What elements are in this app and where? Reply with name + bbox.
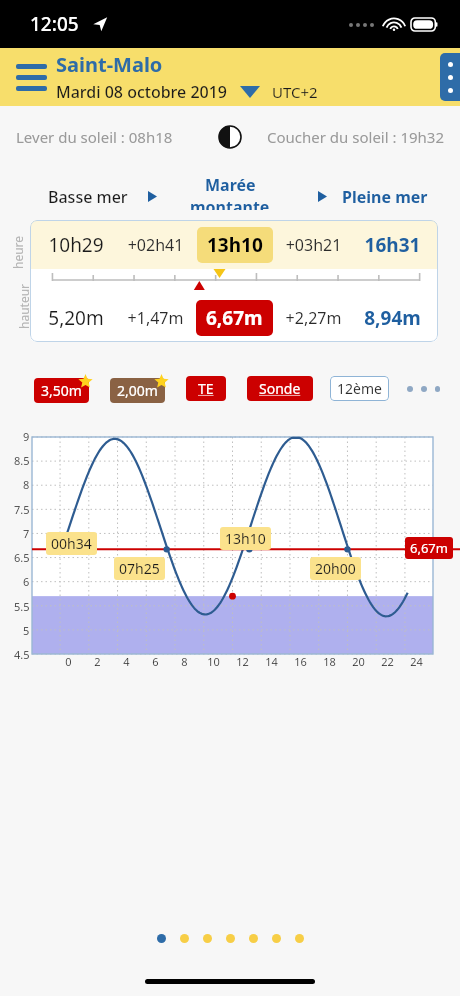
staticText: 6,67m bbox=[410, 539, 448, 557]
staticText: 24 bbox=[402, 654, 431, 669]
staticText: 18 bbox=[315, 654, 344, 669]
staticText: 6 bbox=[23, 574, 30, 589]
button[interactable]: More options bbox=[440, 53, 460, 101]
button[interactable]: Menu bbox=[12, 57, 51, 98]
staticText: 12 bbox=[228, 654, 257, 669]
staticText: 12ème bbox=[337, 379, 382, 398]
staticText: 0 bbox=[54, 654, 83, 669]
staticText: 16h31 bbox=[353, 232, 432, 258]
staticText: UTC+2 bbox=[272, 82, 318, 102]
button[interactable]: Basse mer bbox=[48, 186, 128, 208]
staticText: 5.5 bbox=[14, 599, 30, 614]
staticText: heure bbox=[10, 235, 26, 269]
button[interactable]: 2,00m bbox=[117, 381, 158, 400]
staticText: 16 bbox=[286, 654, 315, 669]
staticText: Saint-Malo bbox=[56, 51, 163, 78]
staticText: 9 bbox=[23, 429, 30, 444]
staticText: 5 bbox=[23, 623, 30, 638]
staticText: 10h29 bbox=[36, 232, 116, 258]
staticText: Mardi 08 octobre 2019 bbox=[56, 81, 228, 103]
staticText: 07h25 bbox=[119, 559, 160, 578]
staticText: 5,20m bbox=[36, 305, 116, 331]
staticText: 8,94m bbox=[353, 305, 432, 331]
button[interactable] bbox=[180, 934, 189, 943]
staticText: Coucher du soleil : 19h32 bbox=[267, 127, 444, 147]
button[interactable]: 12ème bbox=[337, 379, 382, 398]
staticText: 20 bbox=[344, 654, 373, 669]
staticText: 3,50m bbox=[41, 381, 82, 400]
button[interactable]: 13h10 bbox=[207, 232, 263, 258]
staticText: 13h10 bbox=[207, 232, 263, 258]
staticText: 7 bbox=[23, 526, 30, 541]
staticText: 14 bbox=[257, 654, 286, 669]
staticText: 2 bbox=[83, 654, 112, 669]
staticText: 8 bbox=[170, 654, 199, 669]
button[interactable]: Change date bbox=[240, 86, 260, 98]
staticText: 00h34 bbox=[51, 534, 92, 553]
button[interactable] bbox=[226, 934, 235, 943]
staticText: 7.5 bbox=[14, 502, 30, 517]
staticText: 8.5 bbox=[14, 453, 30, 468]
staticText: 2,00m bbox=[117, 381, 158, 400]
staticText: 4.5 bbox=[14, 647, 30, 662]
button[interactable] bbox=[272, 934, 281, 943]
staticText: +1,47m bbox=[116, 307, 195, 329]
staticText: 8 bbox=[23, 477, 30, 492]
staticText: montante bbox=[190, 196, 270, 210]
staticText: 10 bbox=[199, 654, 228, 669]
staticText: +2,27m bbox=[274, 307, 353, 329]
button[interactable] bbox=[203, 934, 212, 943]
button[interactable]: 6,67m bbox=[206, 305, 263, 331]
button[interactable]: TE bbox=[198, 379, 214, 398]
staticText: 6,67m bbox=[206, 305, 263, 331]
staticText: +03h21 bbox=[274, 234, 353, 256]
staticText: Marée bbox=[205, 174, 256, 196]
button[interactable] bbox=[249, 934, 258, 943]
staticText: Sonde bbox=[259, 379, 301, 398]
button[interactable]: Sonde bbox=[259, 379, 301, 398]
staticText: 6 bbox=[141, 654, 170, 669]
staticText: 22 bbox=[373, 654, 402, 669]
staticText: +02h41 bbox=[116, 234, 195, 256]
button[interactable]: Pleine mer bbox=[342, 186, 428, 208]
staticText: 4 bbox=[112, 654, 141, 669]
button[interactable]: 3,50m bbox=[41, 381, 82, 400]
staticText: 6.5 bbox=[14, 550, 30, 565]
button[interactable] bbox=[157, 934, 166, 943]
staticText: 12:05 bbox=[30, 11, 79, 37]
staticText: Lever du soleil : 08h18 bbox=[16, 127, 173, 147]
staticText: hauteur bbox=[16, 283, 32, 329]
staticText: 13h10 bbox=[225, 529, 266, 548]
staticText: 20h00 bbox=[315, 559, 356, 578]
staticText: TE bbox=[198, 379, 214, 398]
button[interactable] bbox=[295, 934, 304, 943]
